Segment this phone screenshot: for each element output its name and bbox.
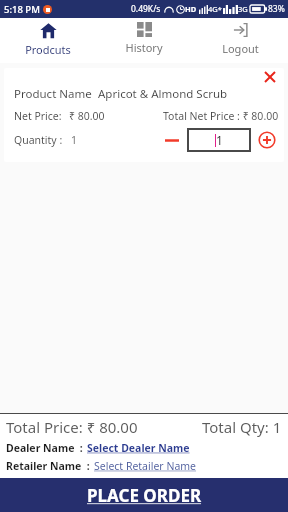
button[interactable]: Decrease quantity — [162, 129, 182, 151]
button[interactable]: Logout — [192, 18, 288, 56]
staticText: Prodcuts — [25, 42, 71, 57]
staticText: ₹ 80.00 — [69, 109, 105, 123]
staticText: 0.49K/s — [131, 3, 161, 15]
staticText: Total Qty: 1 — [202, 417, 282, 437]
button[interactable]: Remove item — [262, 69, 278, 85]
staticText: 3G — [238, 4, 248, 14]
button[interactable]: Retailer Name : — [6, 459, 288, 473]
staticText: Total Net Price : ₹ 80.00 — [163, 109, 279, 123]
staticText: HD — [185, 4, 197, 14]
staticText: Select Retailer Name — [94, 459, 197, 473]
button[interactable]: Remove item — [4, 68, 284, 162]
button[interactable]: Increase quantity — [256, 129, 278, 151]
staticText: Quantity : — [14, 133, 63, 147]
staticText: 1 — [216, 132, 223, 148]
staticText: Apricot & Almond Scrub — [98, 86, 228, 102]
staticText: 1 — [71, 133, 78, 147]
staticText: Select Dealer Name — [87, 441, 190, 455]
staticText: 5:18 PM — [4, 3, 40, 16]
staticText: History — [125, 40, 163, 55]
button[interactable]: 1 — [187, 128, 251, 152]
staticText: Total Price: ₹ 80.00 — [6, 417, 138, 437]
button[interactable]: PLACE ORDER — [0, 478, 288, 512]
staticText: Retailer Name : — [6, 459, 90, 473]
staticText: Logout — [222, 41, 259, 56]
staticText: Product Name — [14, 86, 92, 102]
staticText: 83% — [268, 3, 285, 15]
staticText: Net Price: — [14, 109, 62, 123]
button[interactable]: Prodcuts — [0, 18, 96, 57]
staticText: Dealer Name : — [6, 441, 83, 455]
staticText: PLACE ORDER — [87, 484, 202, 507]
button[interactable]: History — [96, 18, 192, 55]
button[interactable]: Dealer Name : — [6, 441, 288, 455]
staticText: 4G* — [208, 4, 222, 14]
